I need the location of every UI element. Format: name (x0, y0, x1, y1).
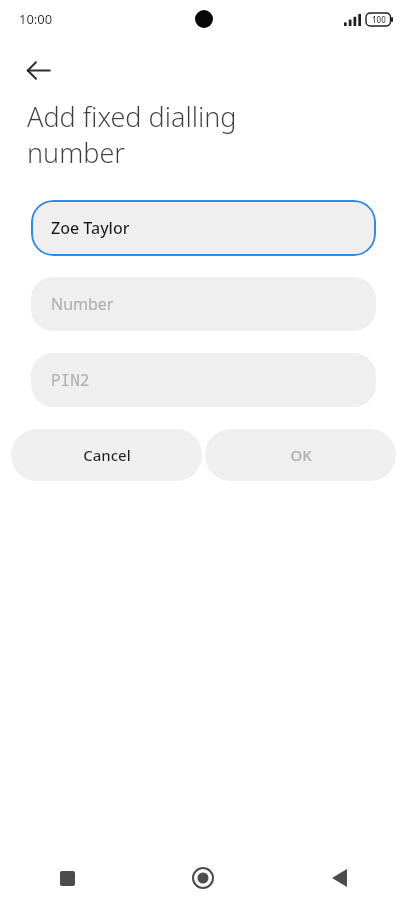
staticText: Cancel (83, 445, 131, 465)
button[interactable]: Home (135, 850, 271, 906)
staticText: 10:00 (19, 10, 53, 28)
staticText: Add fixed dialling number (27, 98, 337, 171)
staticText: PIN2 (51, 369, 90, 391)
staticText: Number (51, 293, 114, 315)
button[interactable]: Cancel (11, 429, 202, 481)
staticText: OK (290, 445, 312, 465)
button[interactable]: PIN2 (31, 353, 376, 407)
button[interactable]: Recent apps (0, 850, 135, 906)
staticText: Zoe Taylor (51, 217, 130, 239)
button[interactable]: Number (31, 277, 376, 331)
button[interactable]: OK (205, 429, 396, 481)
button[interactable]: Back (14, 46, 62, 94)
button[interactable]: Zoe Taylor (31, 200, 376, 256)
staticText: 100 (372, 14, 386, 25)
button[interactable]: Back (271, 850, 407, 906)
